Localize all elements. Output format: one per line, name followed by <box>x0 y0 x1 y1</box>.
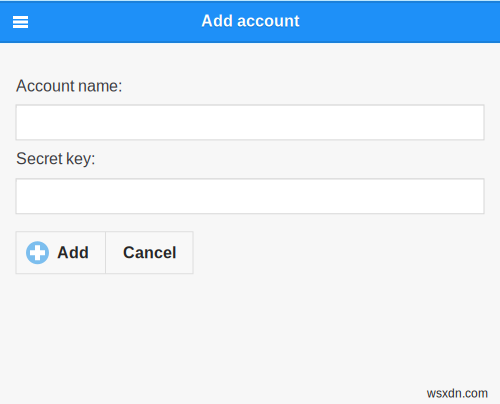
staticText: Add <box>57 244 89 262</box>
button[interactable]: Add <box>16 232 105 274</box>
button[interactable]: Cancel <box>106 232 193 274</box>
staticText: Account name: <box>16 77 122 95</box>
staticText: Secret key: <box>16 150 95 168</box>
staticText: Add account <box>201 12 299 30</box>
staticText: Cancel <box>123 244 176 262</box>
button[interactable]: Menu <box>0 3 40 41</box>
staticText: wsxdn.com <box>427 387 488 400</box>
